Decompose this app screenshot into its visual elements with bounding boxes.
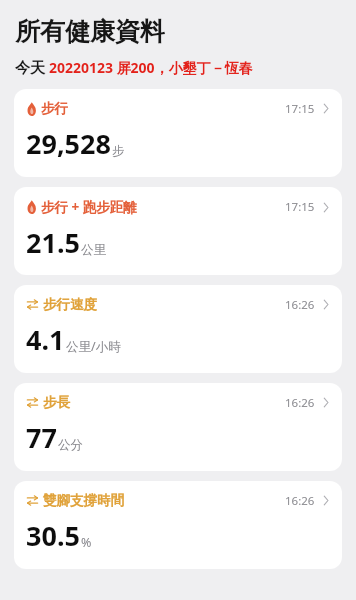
staticText: 公里/小時 xyxy=(66,338,121,355)
button[interactable]: 雙腳支撐時間 xyxy=(14,481,342,569)
staticText: 17:15 xyxy=(285,199,315,215)
staticText: 30.5 xyxy=(26,517,80,554)
staticText: 步行 xyxy=(41,100,68,117)
staticText: 步長 xyxy=(43,394,70,411)
staticText: 所有健康資料 xyxy=(15,16,165,47)
staticText: 步行 + 跑步距離 xyxy=(41,198,137,216)
staticText: % xyxy=(81,534,92,551)
button[interactable]: 步行速度 xyxy=(14,285,342,373)
staticText: 公分 xyxy=(58,437,83,453)
button[interactable]: 步行 + 跑步距離 xyxy=(14,187,342,275)
staticText: 雙腳支撐時間 xyxy=(43,492,124,509)
staticText: 步 xyxy=(112,143,125,159)
staticText: 公里 xyxy=(81,242,106,258)
staticText: 16:26 xyxy=(285,395,315,411)
staticText: 21.5 xyxy=(26,224,80,261)
staticText: 今天 20220123 屏200，小墾丁－恆春 xyxy=(15,57,253,77)
staticText: 29,528 xyxy=(26,125,111,162)
staticText: 77 xyxy=(26,419,57,456)
staticText: 17:15 xyxy=(285,101,315,117)
staticText: 16:26 xyxy=(285,297,315,313)
button[interactable]: 步行 xyxy=(14,89,342,177)
staticText: 16:26 xyxy=(285,493,315,509)
staticText: 4.1 xyxy=(26,321,65,358)
staticText: 步行速度 xyxy=(43,296,97,313)
button[interactable]: 步長 xyxy=(14,383,342,471)
